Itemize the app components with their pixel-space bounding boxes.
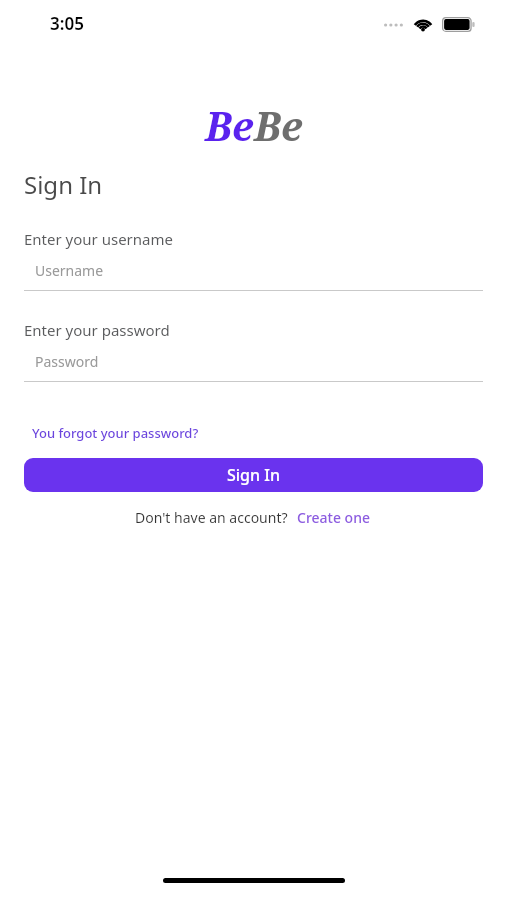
button[interactable]: Create one	[294, 506, 373, 529]
staticText: 3:05	[50, 12, 84, 35]
staticText: Don't have an account?	[135, 508, 288, 527]
button[interactable]: Password	[24, 352, 483, 382]
staticText: Sign In	[227, 464, 280, 486]
button[interactable]: Username	[24, 261, 483, 291]
other: Cellular signal	[384, 21, 405, 29]
staticText: Enter your username	[24, 229, 173, 249]
other: Wi-Fi	[413, 17, 433, 32]
staticText: Be	[205, 98, 254, 152]
staticText: Be	[254, 98, 303, 152]
staticText: Username	[35, 261, 104, 280]
staticText: Create one	[297, 508, 370, 527]
button[interactable]: You forgot your password?	[26, 422, 205, 444]
other: Battery	[442, 17, 475, 32]
button[interactable]: Sign In	[24, 458, 483, 492]
staticText: Enter your password	[24, 320, 170, 340]
staticText: Password	[35, 352, 99, 371]
staticText: You forgot your password?	[32, 424, 199, 442]
staticText: Sign In	[24, 168, 103, 201]
